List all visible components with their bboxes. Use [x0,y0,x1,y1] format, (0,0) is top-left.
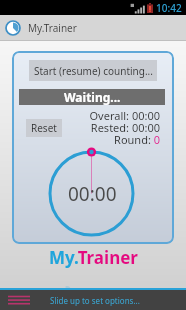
button[interactable]: Options menu [0,290,186,310]
staticText: My.Trainer [49,285,138,308]
button[interactable]: Start (resume) counting... [29,60,157,81]
other: Options menu [8,295,30,305]
staticText: My.Trainer [49,246,138,269]
button[interactable]: My.Trainer [0,15,186,40]
staticText: Round: 0 [12,132,160,147]
staticText: Waiting... [64,89,121,105]
staticText: My.Trainer [28,21,77,35]
staticText: Start (resume) counting... [34,64,153,78]
staticText: 00:00 [68,181,117,206]
button[interactable]: Reset [26,119,62,137]
staticText: Rested: 00:00 [12,120,160,135]
staticText: Overall: 00:00 [12,108,160,123]
staticText: Slide up to set options... [50,295,140,306]
staticText: 10:42 [156,1,182,15]
staticText: Reset [31,121,57,135]
